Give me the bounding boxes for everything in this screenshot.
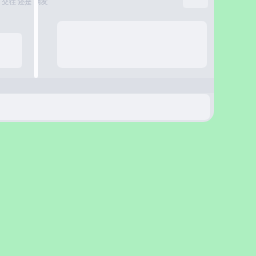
button[interactable]: 交往 还是 朋友 bbox=[0, 0, 214, 122]
staticText: 交往 还是 朋友 bbox=[2, 0, 48, 7]
